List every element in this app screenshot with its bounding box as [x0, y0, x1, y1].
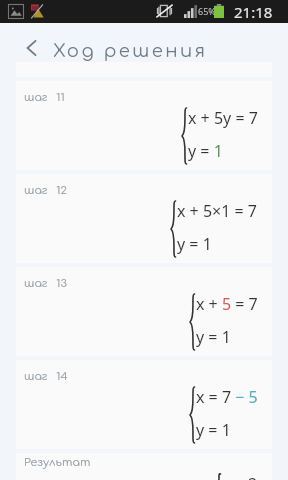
staticText: x + 5 = 7	[196, 293, 258, 315]
staticText: шаг 13	[24, 277, 67, 289]
button[interactable]: шаг 11	[16, 81, 272, 170]
button[interactable]: шаг 14	[16, 360, 272, 449]
staticText: 21:18	[234, 2, 273, 22]
staticText: 65%	[198, 5, 216, 17]
staticText: x = 7 − 5	[196, 386, 258, 408]
button[interactable]: Результат	[16, 453, 272, 480]
button[interactable]: шаг 13	[16, 267, 272, 356]
staticText: шаг 11	[24, 91, 65, 103]
staticText: x + 5y = 7	[188, 107, 258, 129]
staticText: y = 1	[196, 419, 231, 441]
staticText: шаг 14	[24, 370, 68, 382]
staticText: x = 2	[222, 473, 258, 480]
staticText: Ход решения	[53, 41, 208, 61]
staticText: Результат	[24, 456, 91, 468]
button[interactable]: Back	[12, 25, 50, 71]
staticText: y = 1	[196, 326, 231, 348]
button[interactable]: шаг 12	[16, 174, 272, 263]
staticText: y = 1	[177, 233, 212, 255]
staticText: x + 5×1 = 7	[177, 200, 258, 222]
staticText: y = 1	[188, 140, 223, 162]
staticText: шаг 12	[24, 184, 67, 196]
